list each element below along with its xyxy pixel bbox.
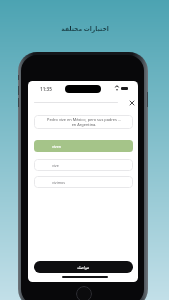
staticText: vive bbox=[52, 163, 59, 168]
staticText: Pedro vive en México, pero sus padres ..… bbox=[47, 117, 121, 127]
button[interactable]: vivimos bbox=[34, 176, 133, 188]
button[interactable]: viven bbox=[34, 140, 133, 152]
staticText: اختبارات مختلفة bbox=[61, 25, 109, 33]
staticText: viven bbox=[52, 144, 62, 149]
staticText: 11:35 bbox=[40, 86, 52, 92]
button[interactable]: Close bbox=[126, 97, 137, 108]
button[interactable]: مواصلة bbox=[34, 261, 133, 273]
staticText: مواصلة bbox=[77, 265, 90, 270]
button[interactable]: vive bbox=[34, 159, 133, 171]
staticText: vivimos bbox=[52, 180, 66, 185]
